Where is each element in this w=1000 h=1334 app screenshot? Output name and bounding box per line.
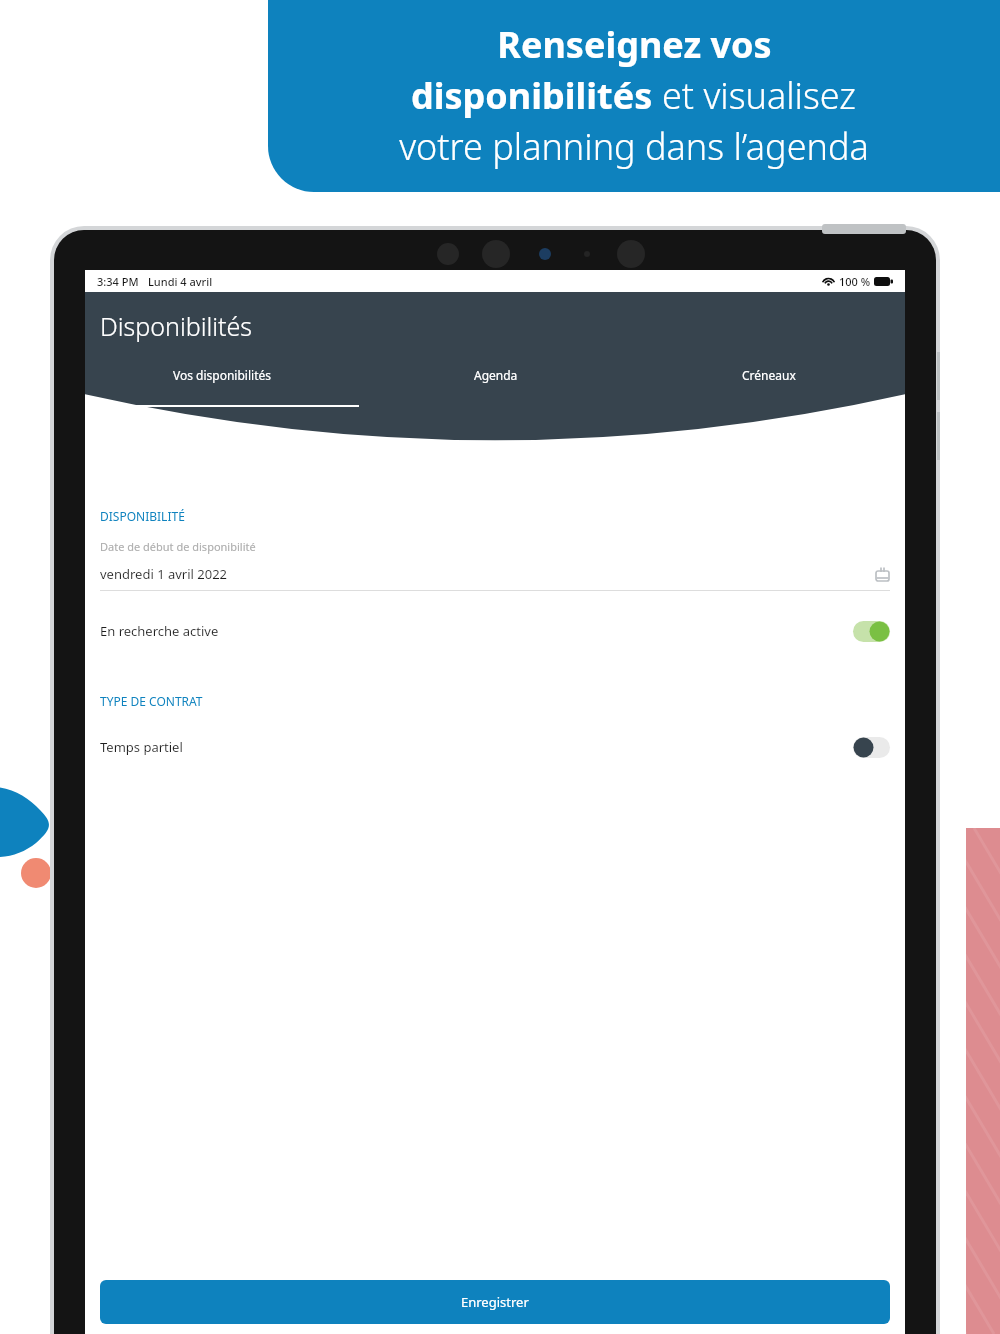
staticText: 3:34 PM <box>97 274 139 289</box>
button[interactable]: En recherche active <box>100 617 890 645</box>
staticText: DISPONIBILITÉ <box>100 508 185 524</box>
staticText: Créneaux <box>742 367 796 383</box>
staticText: TYPE DE CONTRAT <box>100 693 203 709</box>
staticText: Disponibilités <box>100 309 253 343</box>
staticText: Date de début de disponibilité <box>100 539 256 554</box>
other: Choisir une date <box>875 567 890 582</box>
staticText: Agenda <box>474 367 518 383</box>
staticText: 100 % <box>839 274 871 289</box>
staticText: Temps partiel <box>100 738 183 756</box>
button[interactable]: Agenda <box>359 367 632 407</box>
staticText: Vos disponibilités <box>173 367 271 383</box>
staticText: Enregistrer <box>461 1293 529 1311</box>
button[interactable]: Enregistrer <box>100 1280 890 1324</box>
button[interactable]: Temps partiel <box>100 733 890 761</box>
staticText: Lundi 4 avril <box>148 274 213 289</box>
button[interactable]: vendredi 1 avril 2022 <box>100 565 890 583</box>
staticText: votre planning dans l’agenda <box>399 122 869 171</box>
staticText: vendredi 1 avril 2022 <box>100 565 228 583</box>
staticText: Renseignez vos <box>497 20 772 69</box>
staticText: et visualisez <box>662 71 857 120</box>
staticText: En recherche active <box>100 622 219 640</box>
button[interactable]: Créneaux <box>632 367 905 407</box>
staticText: disponibilités <box>411 71 662 120</box>
button[interactable]: Vos disponibilités <box>85 367 359 407</box>
